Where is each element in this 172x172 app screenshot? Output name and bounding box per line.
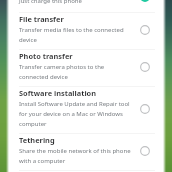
button[interactable]: Software installation (138, 102, 152, 116)
button[interactable]: Photo transfer (0, 49, 172, 86)
button[interactable]: Software installation (0, 86, 172, 133)
button[interactable]: No data transfer (138, 0, 152, 4)
staticText: Tethering (19, 135, 55, 145)
button[interactable]: Tethering (0, 133, 172, 170)
button[interactable]: Photo transfer (138, 60, 152, 74)
button[interactable]: File transfer (138, 23, 152, 37)
staticText: Share the mobile network of this phone w… (19, 145, 135, 165)
staticText: File transfer (19, 14, 64, 24)
staticText: Install Software Update and Repair tool … (19, 98, 135, 128)
button[interactable]: Tethering (138, 144, 152, 158)
staticText: Transfer media files to the connected de… (19, 24, 135, 44)
staticText: Charge only Just charge this phone (19, 0, 82, 5)
button[interactable]: File transfer (0, 12, 172, 49)
staticText: Photo transfer (19, 51, 73, 61)
button[interactable]: No data transfer (0, 0, 172, 10)
staticText: Software installation (19, 88, 97, 98)
staticText: Transfer camera photos to the connected … (19, 61, 135, 81)
